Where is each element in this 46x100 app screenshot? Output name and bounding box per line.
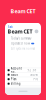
staticText: Beam CET [8, 28, 33, 35]
staticText: Account no. [11, 67, 22, 74]
button[interactable]: Back [5, 25, 41, 29]
staticText: 92 381 [27, 68, 38, 72]
button[interactable]: Status [5, 73, 41, 77]
staticText: All systems normal [11, 47, 35, 50]
staticText: Beam CET [10, 8, 35, 15]
staticText: Status [11, 73, 18, 76]
staticText: Today's summary [11, 37, 31, 40]
staticText: Back [8, 25, 13, 29]
staticText: Pro [33, 77, 38, 81]
staticText: Active [30, 73, 38, 76]
button[interactable]: Billing [5, 82, 41, 86]
button[interactable]: Account no. [5, 68, 41, 73]
staticText: Billing [11, 82, 21, 85]
staticText: Plan [11, 77, 17, 81]
button[interactable]: Plan [5, 77, 41, 82]
staticText: Updated now [11, 42, 30, 45]
